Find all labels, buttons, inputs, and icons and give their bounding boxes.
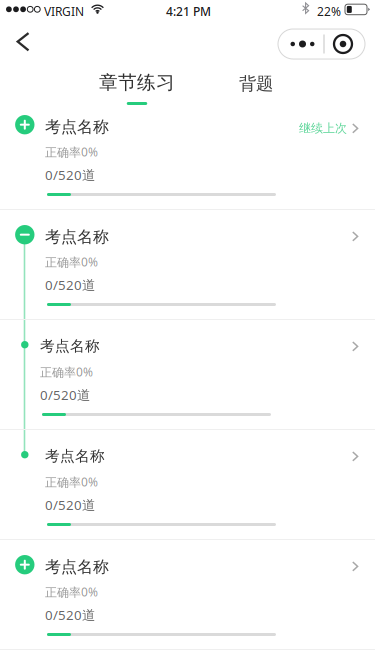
staticText: 章节练习 — [99, 71, 175, 94]
staticText: 0/520道 — [45, 496, 95, 514]
button[interactable]: 背题 — [221, 64, 291, 108]
staticText: 考点名称 — [45, 447, 105, 465]
button[interactable]: 考点名称 — [0, 430, 375, 540]
button[interactable]: 考点名称 — [0, 320, 375, 430]
staticText: 正确率0% — [45, 474, 98, 490]
staticText: 正确率0% — [45, 584, 98, 600]
staticText: VIRGIN — [44, 3, 84, 19]
staticText: 0/520道 — [45, 166, 95, 184]
staticText: 正确率0% — [45, 144, 98, 160]
button[interactable]: Menu — [273, 22, 370, 66]
button[interactable]: Back — [1, 20, 45, 64]
staticText: 考点名称 — [45, 227, 109, 247]
button[interactable]: 考点名称 — [0, 210, 375, 320]
button[interactable]: 章节练习 — [82, 64, 192, 108]
button[interactable]: 考点名称 — [0, 540, 375, 650]
staticText: 0/520道 — [40, 386, 90, 404]
staticText: 考点名称 — [45, 557, 109, 577]
staticText: 继续上次 — [299, 121, 347, 136]
staticText: 考点名称 — [45, 117, 109, 137]
staticText: 背题 — [239, 73, 273, 94]
staticText: 考点名称 — [40, 337, 100, 355]
staticText: 0/520道 — [45, 606, 95, 624]
staticText: 正确率0% — [45, 254, 98, 270]
staticText: 22% — [317, 3, 341, 19]
staticText: 0/520道 — [45, 276, 95, 294]
staticText: 4:21 PM — [166, 3, 211, 19]
staticText: 正确率0% — [40, 364, 93, 380]
button[interactable]: 考点名称 — [0, 100, 375, 210]
